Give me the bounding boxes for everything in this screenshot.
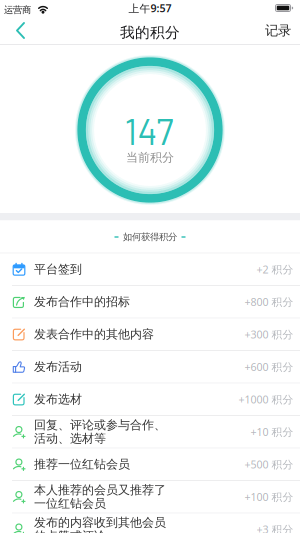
- staticText: 的点赞或评论: [34, 529, 106, 533]
- staticText: 运营商: [4, 4, 31, 16]
- staticText: 平台签到: [34, 262, 82, 277]
- button[interactable]: 记录: [265, 24, 300, 41]
- staticText: +600 积分: [244, 360, 293, 374]
- staticText: 推荐一位红钻会员: [34, 457, 130, 472]
- staticText: +100 积分: [244, 490, 293, 504]
- staticText: +1000 积分: [238, 392, 293, 406]
- staticText: 如何获得积分: [123, 231, 177, 243]
- staticText: 当前积分: [126, 150, 174, 165]
- staticText: +300 积分: [244, 327, 293, 341]
- staticText: 活动、选材等: [34, 431, 106, 446]
- staticText: 本人推荐的会员又推荐了: [34, 483, 166, 497]
- staticText: 发布的内容收到其他会员: [34, 515, 166, 530]
- staticText: 上午9:57: [128, 1, 171, 15]
- staticText: +10 积分: [250, 425, 293, 439]
- staticText: 发表合作中的其他内容: [34, 327, 154, 342]
- staticText: 发布活动: [34, 359, 82, 374]
- staticText: 一位红钻会员: [34, 496, 106, 511]
- staticText: 发布合作中的招标: [34, 294, 130, 309]
- staticText: +800 积分: [244, 295, 293, 309]
- staticText: 回复、评论或参与合作、: [34, 418, 166, 432]
- button[interactable]: Back: [0, 20, 34, 45]
- staticText: +2 积分: [256, 262, 293, 276]
- staticText: 147: [124, 109, 173, 152]
- staticText: 我的积分: [120, 23, 180, 41]
- staticText: +3 积分: [256, 522, 293, 533]
- staticText: 发布选材: [34, 392, 82, 407]
- staticText: +500 积分: [244, 457, 293, 471]
- staticText: 记录: [265, 22, 291, 39]
